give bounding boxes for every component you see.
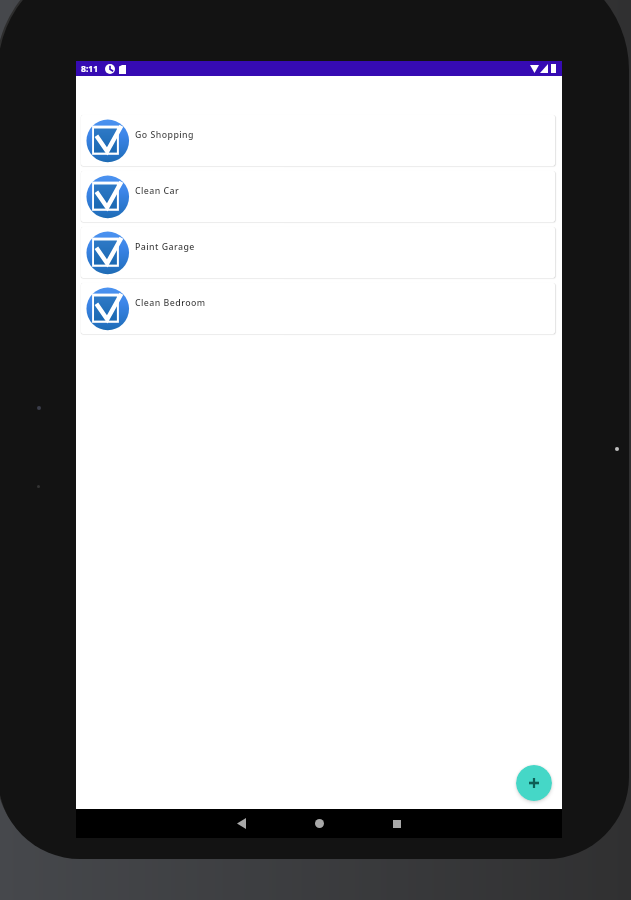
staticText: Clean Car	[135, 185, 180, 197]
button[interactable]: Clean Car	[81, 171, 555, 222]
button[interactable]: Paint Garage	[81, 227, 555, 278]
staticText: Go Shopping	[135, 129, 194, 141]
button[interactable]: Go Shopping	[81, 115, 555, 166]
button[interactable]: Recents	[382, 809, 412, 838]
button[interactable]: Back	[226, 809, 256, 838]
button[interactable]: Add task	[516, 765, 552, 801]
button[interactable]: Clean Bedroom	[81, 283, 555, 334]
staticText: Clean Bedroom	[135, 297, 206, 309]
staticText: 8:11	[81, 63, 99, 75]
staticText: Paint Garage	[135, 241, 195, 253]
button[interactable]: Home	[304, 809, 334, 838]
